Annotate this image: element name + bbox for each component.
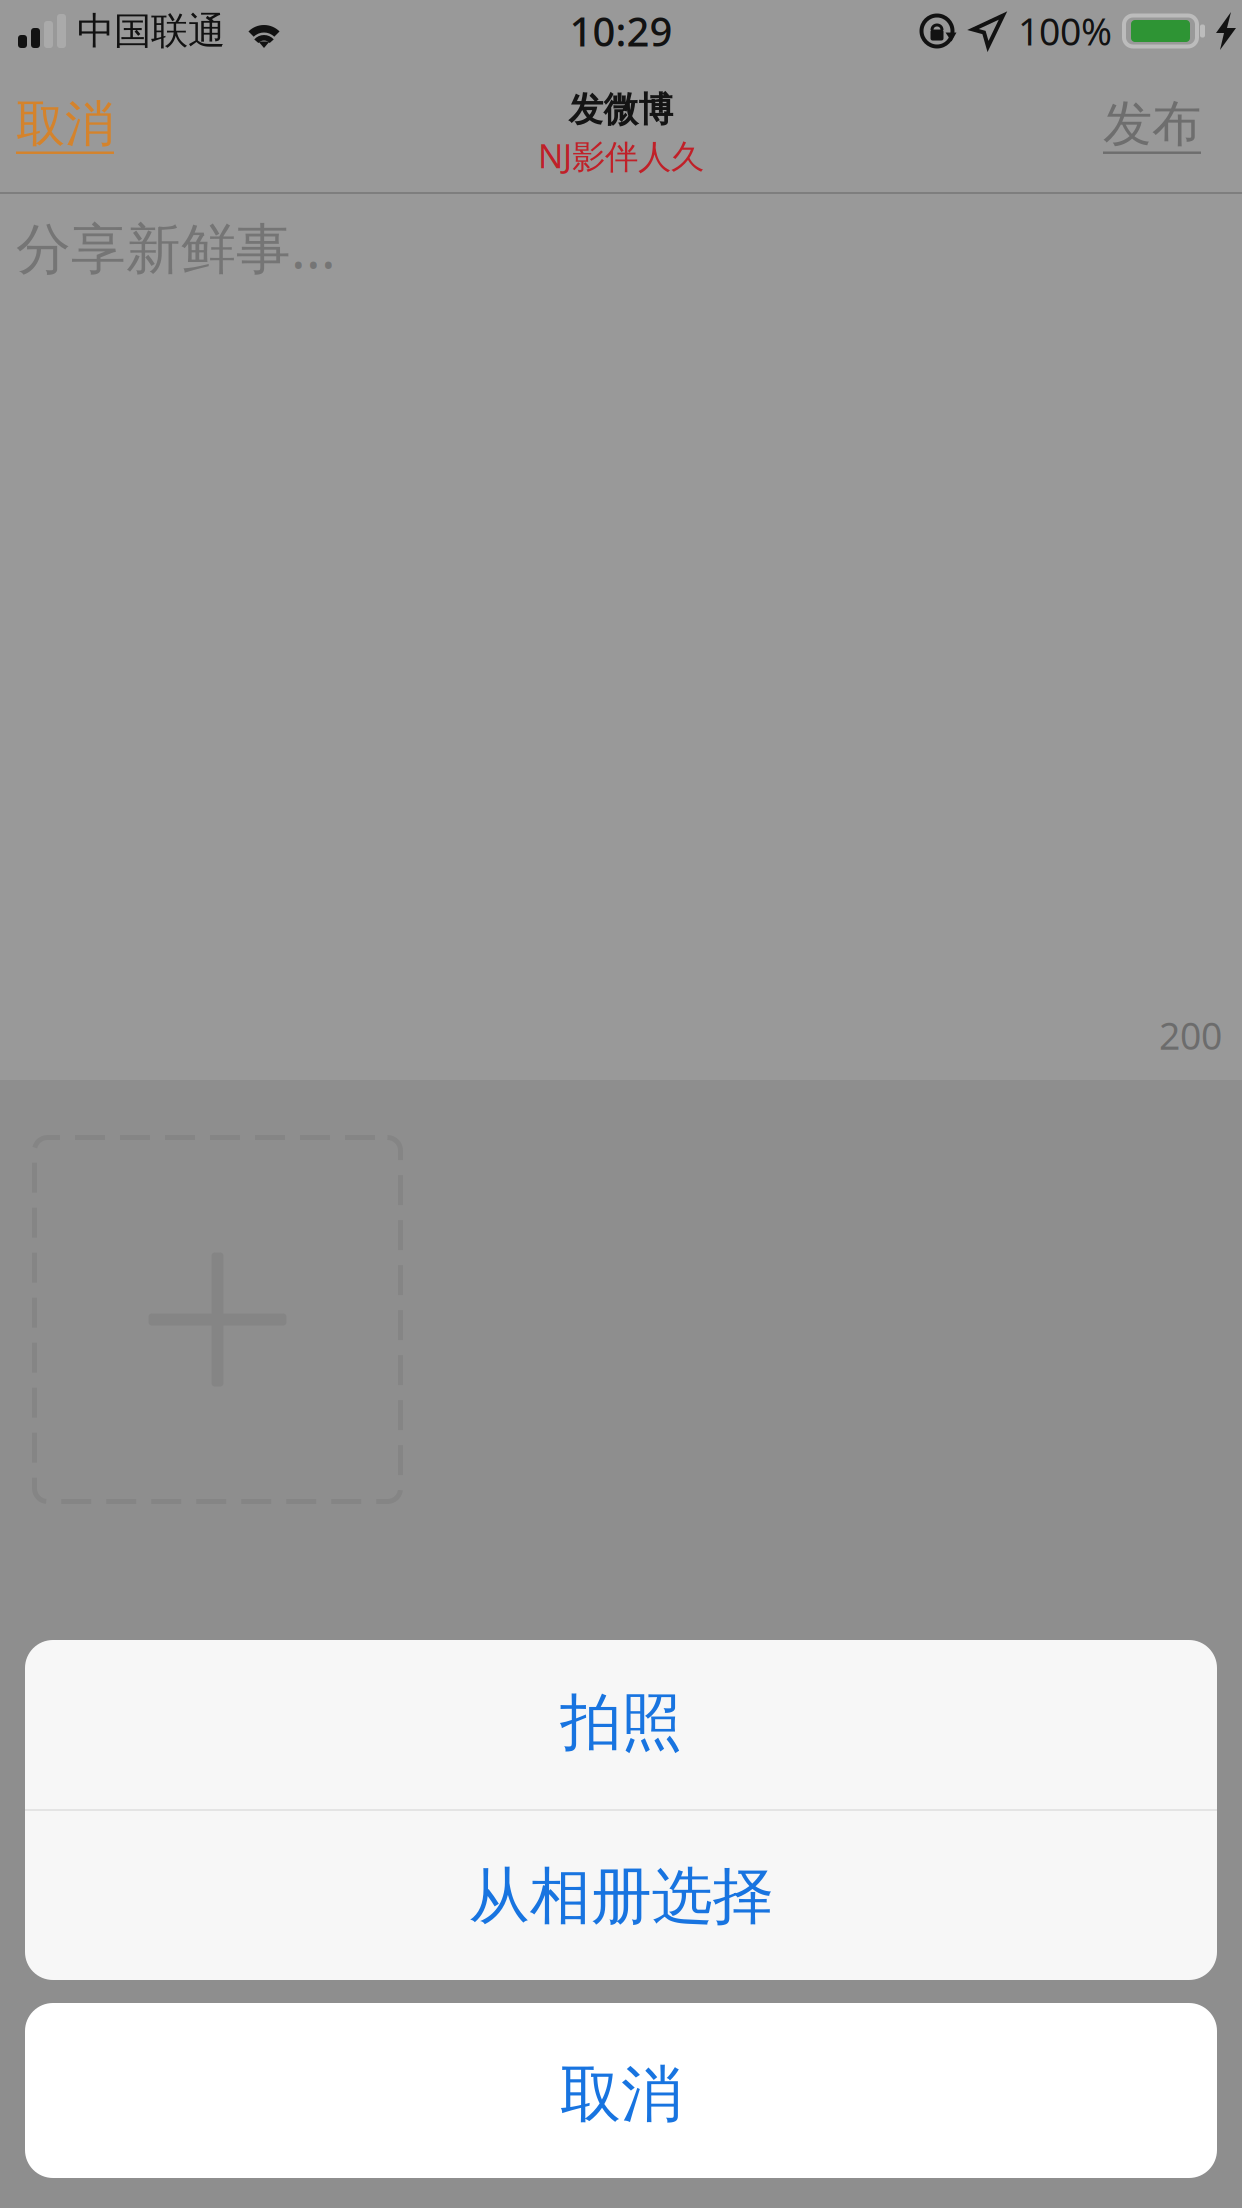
staticText: 取消 [16, 94, 114, 154]
staticText: 发布 [1103, 94, 1201, 154]
staticText: 200 [1159, 1010, 1222, 1060]
button[interactable]: 取消 [0, 79, 114, 175]
staticText: 100% [1018, 6, 1112, 56]
button[interactable]: 拍照 [25, 1640, 1217, 1809]
staticText: 中国联通 [77, 8, 225, 54]
staticText: 发微博 [568, 88, 673, 131]
staticText: 10:29 [569, 4, 672, 57]
staticText: 从相册选择 [468, 1859, 773, 1934]
staticText: 拍照 [560, 1685, 682, 1760]
button[interactable]: 从相册选择 [25, 1811, 1217, 1980]
button[interactable]: 发布 [1103, 79, 1242, 175]
staticText: 取消 [560, 2057, 682, 2132]
staticText: 分享新鲜事... [16, 211, 336, 284]
button[interactable]: 取消 [25, 2003, 1217, 2178]
staticText: NJ影伴人久 [538, 133, 704, 177]
